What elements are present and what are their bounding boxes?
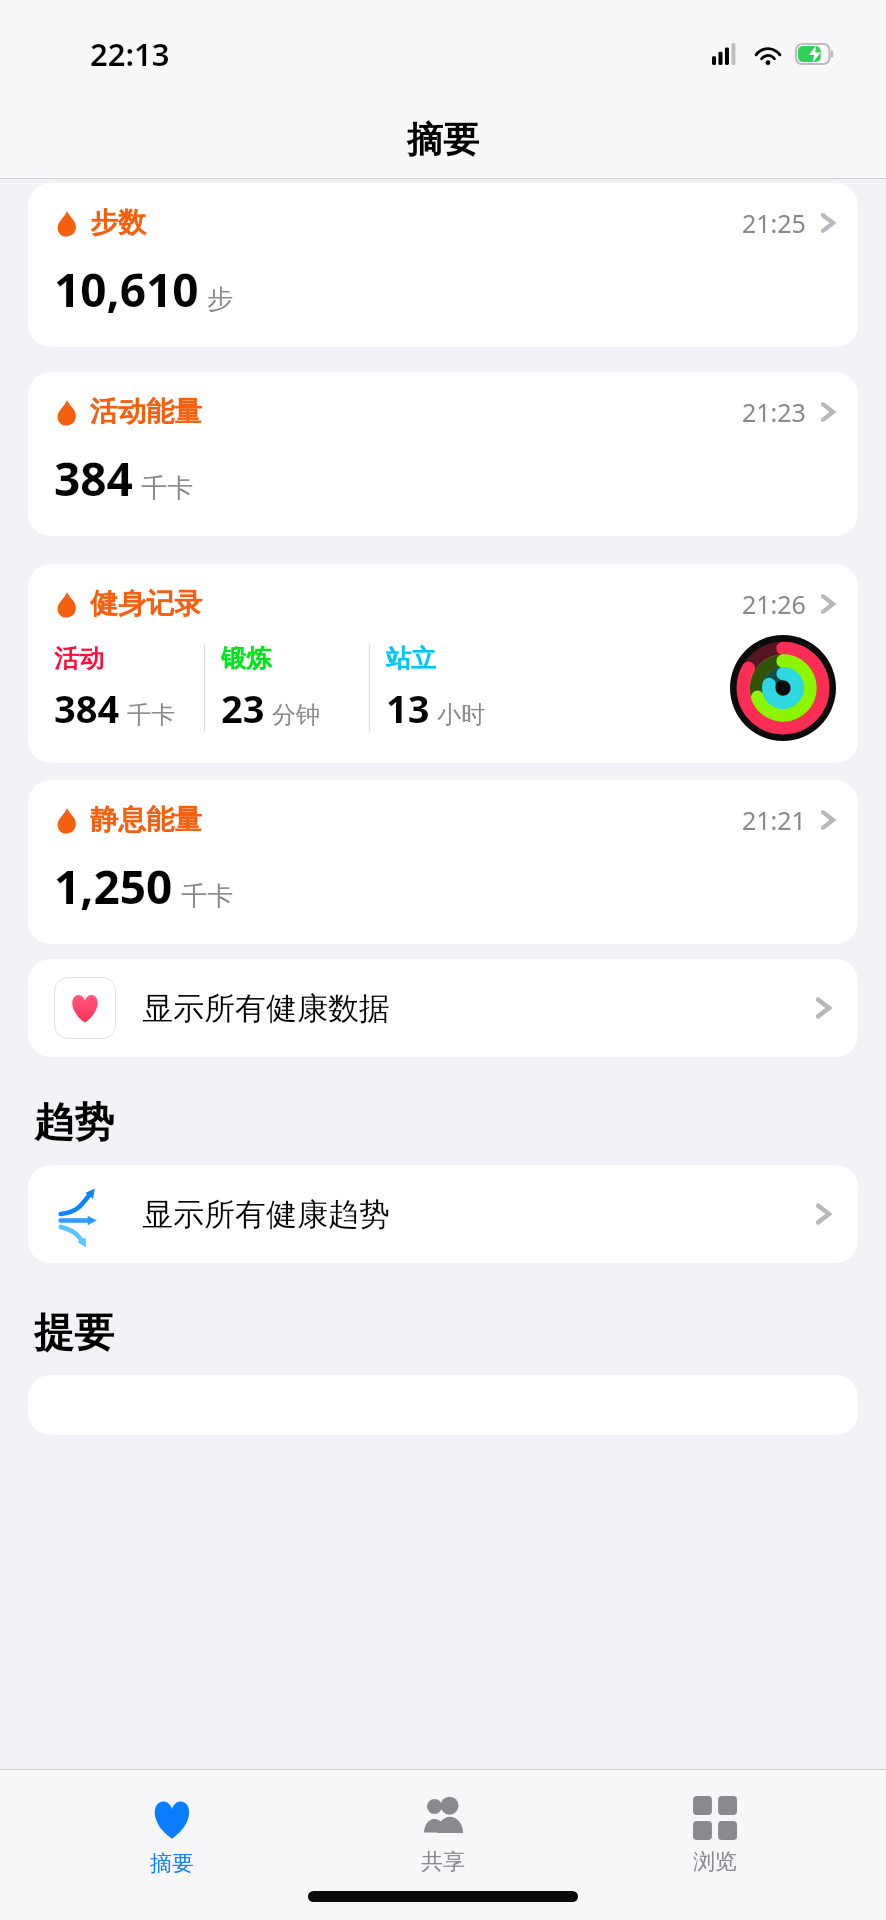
staticText: 384 bbox=[54, 447, 133, 510]
staticText: 1,250 bbox=[54, 855, 173, 918]
button[interactable]: 浏览 bbox=[615, 1792, 815, 1880]
staticText: 千卡 bbox=[181, 880, 233, 913]
staticText: 显示所有健康数据 bbox=[142, 989, 390, 1028]
staticText: 站立 bbox=[386, 643, 436, 674]
staticText: 活动 bbox=[54, 643, 104, 674]
staticText: 小时 bbox=[437, 700, 485, 730]
staticText: 摘要 bbox=[150, 1850, 194, 1878]
staticText: 千卡 bbox=[127, 700, 175, 730]
staticText: 21:26 bbox=[742, 587, 806, 621]
staticText: 千卡 bbox=[141, 472, 193, 505]
staticText: 趋势 bbox=[34, 1097, 114, 1147]
staticText: 步 bbox=[207, 283, 233, 316]
staticText: 21:21 bbox=[742, 803, 806, 837]
button[interactable]: 显示所有健康趋势 bbox=[28, 1165, 858, 1263]
button[interactable]: 共享 bbox=[343, 1792, 543, 1880]
staticText: 分钟 bbox=[272, 700, 320, 730]
staticText: 活动能量 bbox=[90, 394, 202, 429]
button[interactable]: 摘要 bbox=[72, 1792, 272, 1882]
staticText: 静息能量 bbox=[90, 802, 202, 837]
staticText: 健身记录 bbox=[90, 586, 202, 621]
staticText: 步数 bbox=[90, 205, 146, 240]
staticText: 23 bbox=[221, 682, 265, 734]
staticText: 21:25 bbox=[742, 206, 806, 240]
staticText: 摘要 bbox=[407, 117, 479, 162]
button[interactable]: 静息能量 bbox=[28, 780, 858, 944]
staticText: 锻炼 bbox=[221, 643, 271, 674]
staticText: 10,610 bbox=[54, 258, 199, 321]
staticText: 显示所有健康趋势 bbox=[142, 1195, 390, 1234]
button[interactable]: 活动能量 bbox=[28, 372, 858, 536]
button[interactable]: 健身记录 bbox=[28, 564, 858, 763]
button[interactable]: 步数 bbox=[28, 183, 858, 347]
staticText: 21:23 bbox=[742, 395, 806, 429]
staticText: 提要 bbox=[34, 1307, 114, 1357]
staticText: 384 bbox=[54, 682, 120, 734]
staticText: 浏览 bbox=[693, 1848, 737, 1876]
staticText: 22:13 bbox=[90, 33, 170, 75]
staticText: 13 bbox=[386, 682, 430, 734]
staticText: 共享 bbox=[421, 1848, 465, 1876]
button[interactable]: 显示所有健康数据 bbox=[28, 959, 858, 1057]
